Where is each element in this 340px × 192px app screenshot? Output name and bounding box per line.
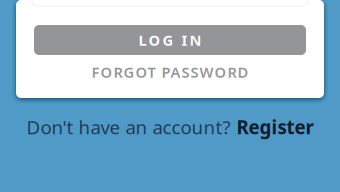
button[interactable]: LOG IN xyxy=(34,25,306,55)
staticText: Don't have an account? xyxy=(26,115,230,139)
button[interactable]: Don't have an account? xyxy=(0,114,340,140)
staticText: LOG IN xyxy=(138,30,201,50)
staticText: Register xyxy=(236,115,313,139)
staticText: FORGOT PASSWORD xyxy=(91,62,248,82)
button[interactable]: FORGOT PASSWORD xyxy=(91,63,248,81)
